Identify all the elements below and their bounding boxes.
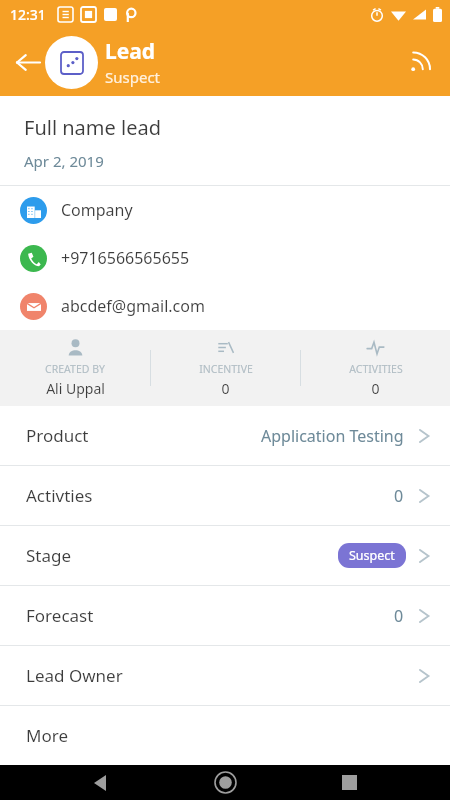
staticText: 0 [221,379,230,398]
button[interactable]: Broadcast [398,40,442,84]
button[interactable]: Activties [0,466,450,525]
staticText: +9716566565655 [61,247,190,269]
staticText: Full name lead [24,114,161,141]
staticText: CREATED BY [45,362,105,376]
staticText: 0 [371,379,380,398]
staticText: 12:31 [10,5,46,24]
staticText: Suspect [349,547,395,564]
button[interactable]: CREATED BY [0,330,150,406]
staticText: INCENTIVE [199,362,253,376]
button[interactable]: INCENTIVE [151,330,300,406]
staticText: Forecast [26,604,94,627]
staticText: Ali Uppal [46,379,105,398]
staticText: 0 [394,605,404,627]
staticText: Application Testing [261,425,404,447]
button[interactable]: abcdef@gmail.com [0,282,450,330]
staticText: Suspect [105,67,160,87]
staticText: Activties [26,484,93,507]
button[interactable]: More [0,706,450,765]
button[interactable]: Product [0,406,450,465]
button[interactable]: Lead Owner [0,646,450,705]
staticText: Lead [105,37,156,66]
staticText: Stage [26,544,72,567]
staticText: Lead Owner [26,664,123,687]
button[interactable]: Forecast [0,586,450,645]
staticText: Company [61,199,133,221]
staticText: ACTIVITIES [349,362,403,376]
staticText: 0 [394,485,404,507]
staticText: Apr 2, 2019 [24,151,104,171]
button[interactable]: Company [0,186,450,234]
button[interactable]: Back [80,765,124,800]
button[interactable]: Stage [0,526,450,585]
button[interactable]: +9716566565655 [0,234,450,282]
staticText: More [26,724,68,747]
button[interactable]: Recents [327,765,371,800]
staticText: Product [26,424,89,447]
button[interactable]: ACTIVITIES [301,330,450,406]
button[interactable]: Home [203,765,247,800]
staticText: abcdef@gmail.com [61,295,205,317]
button[interactable]: Back [6,40,50,84]
